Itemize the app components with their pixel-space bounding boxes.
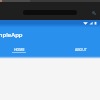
button[interactable]: ABOUT bbox=[50, 43, 100, 56]
button[interactable]: HOME bbox=[0, 43, 50, 56]
staticText: SampleApp bbox=[0, 31, 23, 39]
staticText: HOME bbox=[14, 47, 25, 52]
staticText: ABOUT bbox=[75, 47, 87, 52]
